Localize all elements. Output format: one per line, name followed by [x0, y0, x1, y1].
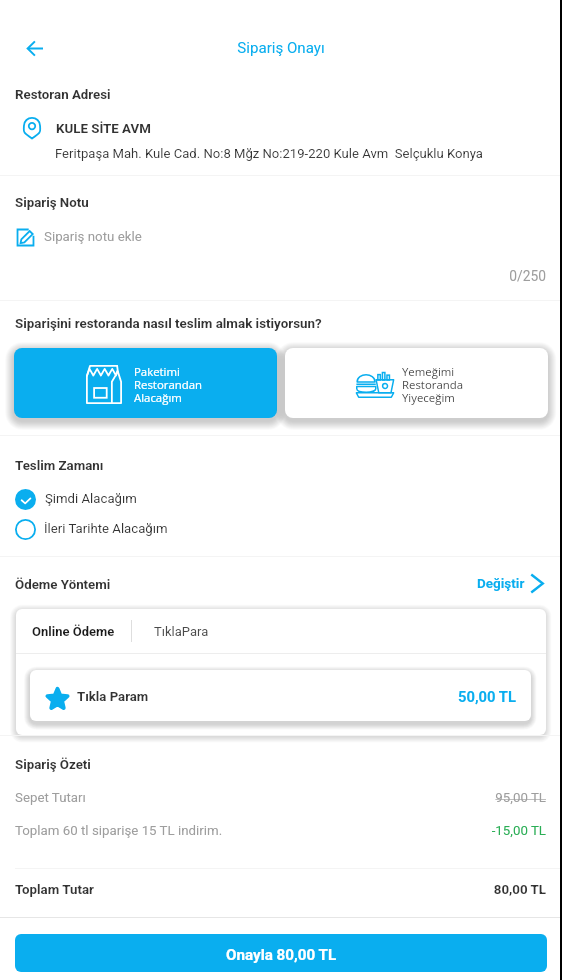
button[interactable]: Paketimi: [14, 348, 277, 418]
button[interactable]: Onayla 80,00 TL: [15, 934, 547, 972]
staticText: 0/250: [286, 268, 546, 284]
staticText: Restorandan: [134, 377, 203, 393]
button[interactable]: Yemeğimi: [285, 348, 548, 418]
staticText: 80,00 TL: [286, 882, 546, 898]
staticText: 95,00 TL: [286, 790, 546, 806]
staticText: Sipariş notu ekle: [44, 229, 142, 245]
button[interactable]: TıklaPara: [132, 609, 231, 653]
staticText: Değiştir: [477, 575, 525, 591]
staticText: -15,00 TL: [286, 823, 546, 839]
button[interactable]: [0, 516, 562, 542]
staticText: Online Ödeme: [32, 624, 115, 639]
staticText: TıklaPara: [154, 624, 209, 639]
staticText: Sepet Tutarı: [15, 790, 86, 806]
staticText: 50,00 TL: [256, 688, 516, 705]
staticText: Sipariş Notu: [15, 195, 89, 211]
staticText: Feritpaşa Mah. Kule Cad. No:8 Mğz No:219…: [55, 146, 483, 161]
staticText: Paketimi: [134, 364, 180, 380]
staticText: Alacağım: [134, 390, 182, 406]
staticText: Teslim Zamanı: [15, 458, 104, 474]
button[interactable]: Değiştir: [470, 570, 544, 596]
staticText: Yemeğimi: [402, 364, 455, 380]
staticText: KULE SİTE AVM: [56, 121, 151, 137]
staticText: Sipariş Onayı: [181, 39, 381, 57]
staticText: Onayla 80,00 TL: [226, 946, 337, 964]
button[interactable]: Back: [12, 26, 56, 70]
button[interactable]: [30, 670, 531, 721]
staticText: Restoran Adresi: [15, 87, 111, 103]
button[interactable]: [0, 486, 562, 512]
staticText: Sipariş Özeti: [15, 757, 91, 773]
staticText: Ödeme Yöntemi: [15, 577, 111, 593]
staticText: Siparişini restoranda nasıl teslim almak…: [15, 316, 322, 332]
staticText: Şimdi Alacağım: [45, 491, 137, 506]
staticText: Tıkla Param: [77, 689, 149, 704]
button[interactable]: [0, 222, 562, 252]
button[interactable]: Online Ödeme: [16, 609, 131, 653]
staticText: Toplam Tutar: [15, 882, 94, 898]
staticText: Yiyeceğim: [402, 390, 455, 406]
staticText: Restoranda: [402, 377, 464, 393]
staticText: İleri Tarihte Alacağım: [44, 521, 168, 536]
staticText: Toplam 60 tl siparişe 15 TL indirim.: [15, 823, 223, 839]
